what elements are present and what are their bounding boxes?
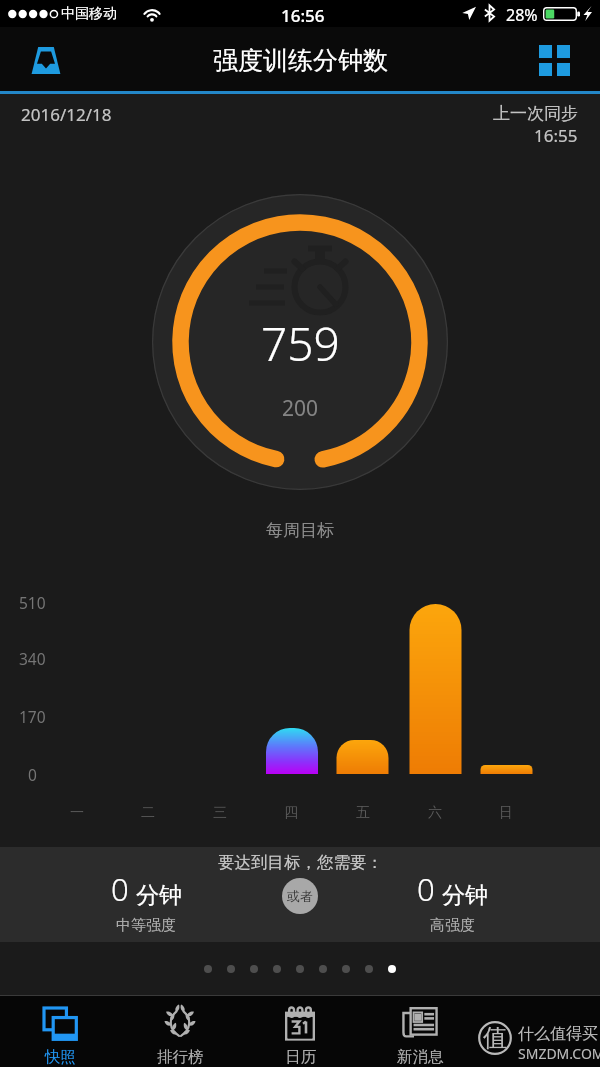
- staticText: 340: [19, 648, 46, 669]
- staticText: 0: [28, 764, 37, 785]
- button[interactable]: 快照: [0, 996, 120, 1067]
- staticText: 759: [261, 312, 340, 375]
- staticText: 510: [19, 592, 46, 613]
- staticText: 2016/12/18: [21, 103, 112, 126]
- button[interactable]: Grid view: [508, 27, 600, 94]
- staticText: 五: [356, 804, 370, 822]
- staticText: 值: [483, 1023, 507, 1053]
- staticText: 新消息: [397, 1047, 444, 1067]
- staticText: 快照: [45, 1047, 76, 1067]
- staticText: 中国移动: [61, 5, 117, 23]
- staticText: 每周目标: [266, 520, 334, 541]
- staticText: 0: [111, 868, 129, 910]
- staticText: 分钟: [442, 881, 488, 910]
- staticText: 分钟: [136, 881, 182, 910]
- staticText: 三: [213, 804, 227, 822]
- staticText: 0: [417, 868, 435, 910]
- staticText: 170: [19, 706, 46, 727]
- button[interactable]: 日历: [240, 996, 360, 1067]
- staticText: 200: [282, 394, 319, 423]
- staticText: SMZDM.COM: [518, 1044, 600, 1063]
- staticText: 四: [284, 804, 298, 822]
- staticText: 排行榜: [157, 1047, 204, 1067]
- staticText: 什么值得买: [518, 1024, 598, 1044]
- staticText: 16:56: [281, 4, 325, 27]
- staticText: 中等强度: [116, 916, 176, 935]
- staticText: 16:55: [534, 124, 578, 147]
- staticText: 二: [141, 804, 155, 822]
- staticText: 日历: [285, 1047, 316, 1067]
- staticText: 六: [428, 804, 442, 822]
- staticText: 强度训练分钟数: [213, 45, 388, 76]
- staticText: 日: [499, 804, 513, 822]
- button[interactable]: 新消息: [360, 996, 480, 1067]
- staticText: 高强度: [430, 916, 475, 935]
- button[interactable]: 排行榜: [120, 996, 240, 1067]
- staticText: 上一次同步: [493, 103, 578, 124]
- staticText: 28%: [506, 4, 538, 26]
- staticText: 一: [70, 804, 84, 822]
- staticText: 或者: [287, 888, 313, 904]
- button[interactable]: Inbox: [0, 27, 92, 94]
- staticText: 要达到目标，您需要：: [218, 852, 383, 873]
